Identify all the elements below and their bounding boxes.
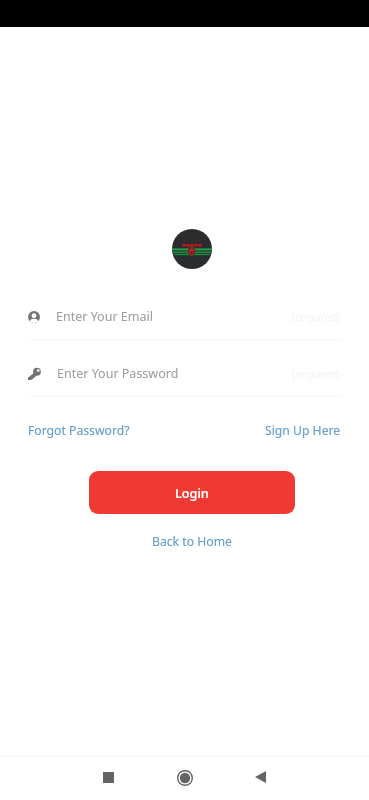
button[interactable]: Sign Up Here [265, 422, 341, 439]
staticText: Enter Your Password [57, 365, 179, 382]
button[interactable]: Enter Your Password [0, 351, 369, 397]
staticText: (required) [292, 367, 341, 381]
staticText: Login [175, 484, 209, 501]
button[interactable]: Forgot Password? [28, 422, 130, 439]
button[interactable]: Login [89, 471, 295, 514]
button[interactable]: Enter Your Email [0, 294, 369, 340]
button[interactable]: Recents [92, 761, 124, 793]
button[interactable]: Home [169, 762, 201, 794]
staticText: (required) [292, 310, 341, 324]
button[interactable]: Back to Home [152, 533, 232, 550]
staticText: Enter Your Email [56, 308, 153, 325]
button[interactable]: Back [244, 761, 276, 793]
